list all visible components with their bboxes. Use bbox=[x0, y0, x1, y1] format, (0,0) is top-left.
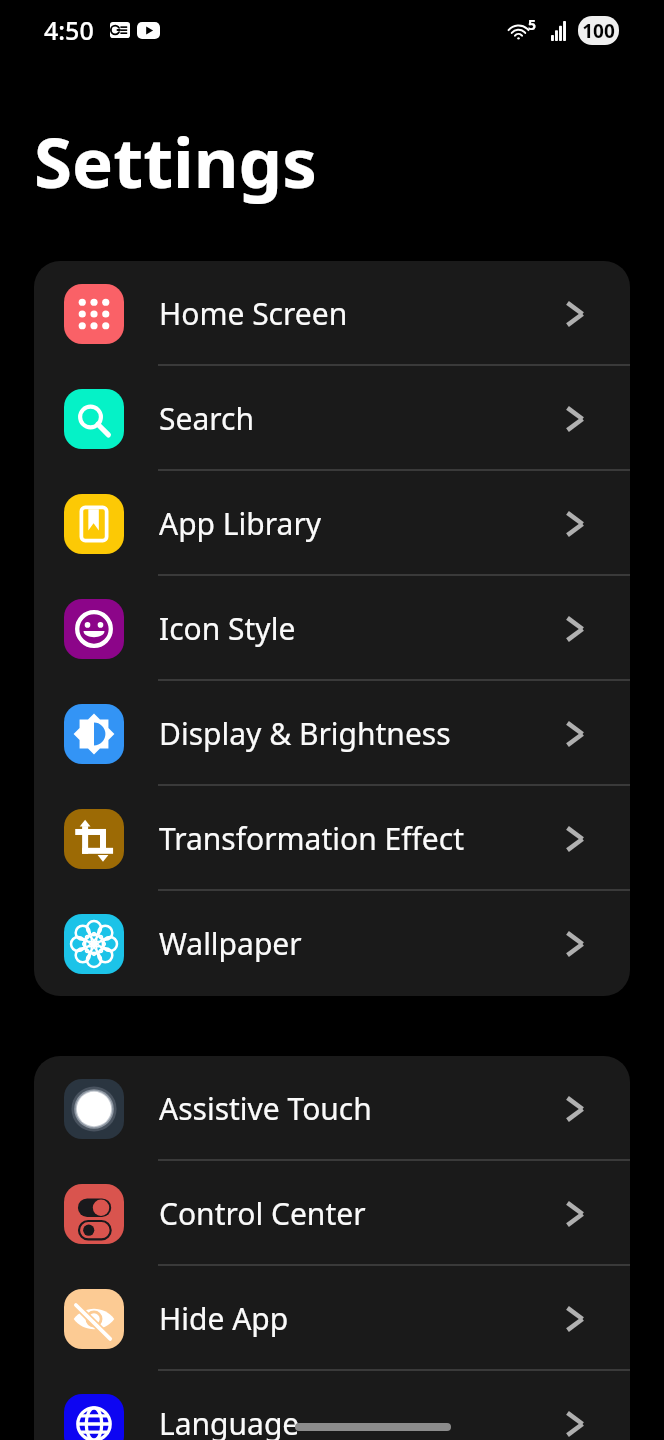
other: Open bbox=[561, 615, 589, 643]
button[interactable]: Search bbox=[34, 366, 630, 471]
other: Open bbox=[561, 300, 589, 328]
staticText: 4:50 bbox=[44, 13, 94, 47]
staticText: Assistive Touch bbox=[159, 1088, 561, 1129]
staticText: Hide App bbox=[159, 1298, 561, 1339]
other: Open bbox=[561, 720, 589, 748]
staticText: 100 bbox=[582, 18, 615, 44]
staticText: Search bbox=[159, 398, 561, 439]
other: Open bbox=[561, 930, 589, 958]
button[interactable]: Wallpaper bbox=[34, 891, 630, 996]
staticText: Transformation Effect bbox=[159, 818, 561, 859]
staticText: Display & Brightness bbox=[159, 713, 561, 754]
other: Open bbox=[561, 1305, 589, 1333]
other: Open bbox=[561, 825, 589, 853]
button[interactable]: Assistive Touch bbox=[34, 1056, 630, 1161]
other: Open bbox=[561, 1200, 589, 1228]
staticText: Language bbox=[159, 1403, 561, 1440]
other: Open bbox=[561, 405, 589, 433]
button[interactable]: Transformation Effect bbox=[34, 786, 630, 891]
button[interactable]: Control Center bbox=[34, 1161, 630, 1266]
other: Open bbox=[561, 510, 589, 538]
other: Open bbox=[561, 1095, 589, 1123]
staticText: App Library bbox=[159, 503, 561, 544]
button[interactable]: Display & Brightness bbox=[34, 681, 630, 786]
staticText: Home Screen bbox=[159, 293, 561, 334]
other: Open bbox=[561, 1410, 589, 1438]
button[interactable]: Hide App bbox=[34, 1266, 630, 1371]
staticText: Wallpaper bbox=[159, 923, 561, 964]
staticText: 5 bbox=[528, 15, 537, 34]
button[interactable]: App Library bbox=[34, 471, 630, 576]
button[interactable]: Home Screen bbox=[34, 261, 630, 366]
staticText: Control Center bbox=[159, 1193, 561, 1234]
staticText: Settings bbox=[34, 114, 317, 208]
button[interactable]: Icon Style bbox=[34, 576, 630, 681]
staticText: Icon Style bbox=[159, 608, 561, 649]
button[interactable]: Language bbox=[34, 1371, 630, 1440]
